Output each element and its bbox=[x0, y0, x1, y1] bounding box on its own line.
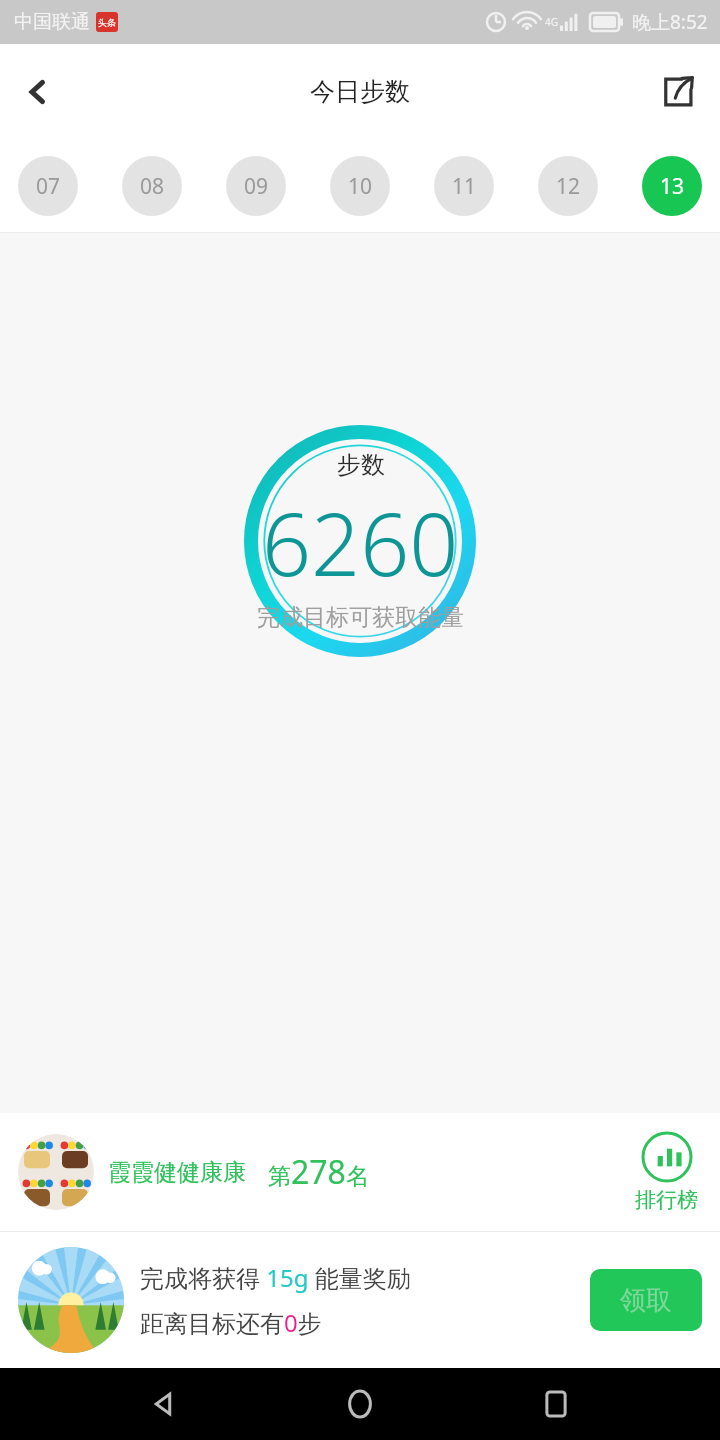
button[interactable]: Back bbox=[8, 62, 68, 122]
button[interactable]: Home bbox=[328, 1372, 392, 1436]
button[interactable]: 霞霞健健康康 bbox=[0, 1113, 720, 1231]
staticText: 今日步数 bbox=[310, 76, 410, 107]
staticText: 霞霞健健康康 bbox=[108, 1158, 246, 1187]
button[interactable]: 07 bbox=[18, 156, 78, 216]
button[interactable]: Recents bbox=[524, 1372, 588, 1436]
staticText: 6260 bbox=[262, 484, 459, 601]
button[interactable]: 13 bbox=[642, 156, 702, 216]
staticText: 领取 bbox=[620, 1284, 672, 1317]
staticText: 第278名 bbox=[268, 1150, 369, 1194]
staticText: 09 bbox=[244, 172, 269, 201]
button[interactable]: 11 bbox=[434, 156, 494, 216]
button[interactable]: 08 bbox=[122, 156, 182, 216]
button[interactable]: 09 bbox=[226, 156, 286, 216]
staticText: 13 bbox=[660, 172, 685, 201]
staticText: 晚上8:52 bbox=[632, 9, 708, 35]
staticText: 完成将获得 15g 能量奖励 bbox=[140, 1261, 411, 1294]
staticText: 11 bbox=[452, 172, 477, 201]
staticText: 完成目标可获取能量 bbox=[257, 603, 464, 632]
staticText: 排行榜 bbox=[635, 1187, 698, 1213]
staticText: 07 bbox=[36, 172, 61, 201]
staticText: 步数 bbox=[337, 450, 385, 480]
button[interactable]: Back bbox=[132, 1372, 196, 1436]
staticText: 4G bbox=[545, 15, 558, 29]
button[interactable]: 12 bbox=[538, 156, 598, 216]
staticText: 08 bbox=[140, 172, 165, 201]
button[interactable]: 10 bbox=[330, 156, 390, 216]
button[interactable]: Share bbox=[650, 64, 706, 120]
button[interactable]: 领取 bbox=[590, 1269, 702, 1331]
staticText: 距离目标还有0步 bbox=[140, 1306, 322, 1339]
staticText: 中国联通 bbox=[14, 10, 90, 34]
button[interactable]: 排行榜 bbox=[631, 1131, 702, 1213]
staticText: 12 bbox=[556, 172, 581, 201]
staticText: 头条 bbox=[98, 17, 116, 28]
staticText: 10 bbox=[348, 172, 373, 201]
